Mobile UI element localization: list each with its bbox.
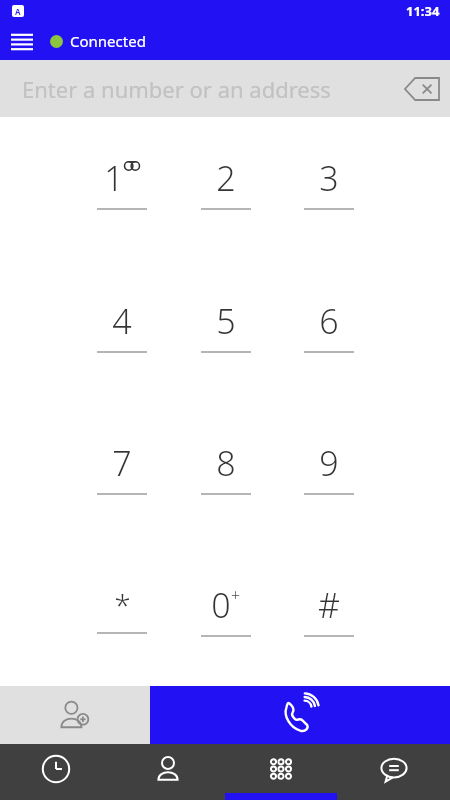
button[interactable]: Call [150,686,450,744]
button[interactable]: Messages [337,744,450,800]
button[interactable]: 4 [70,260,174,402]
button[interactable]: Recents [0,744,112,800]
button[interactable]: 8 [174,402,277,544]
button[interactable]: 5 [174,260,277,402]
button[interactable]: 3 [277,117,380,260]
button[interactable]: 9 [277,402,380,544]
staticText: + [231,584,241,606]
button[interactable]: Enter a number or an address [0,60,450,117]
staticText: 8 [216,440,236,486]
button[interactable]: 7 [70,402,174,544]
staticText: # [318,582,340,628]
staticText: 4 [112,298,132,344]
staticText: 2 [216,155,236,201]
staticText: 6 [319,298,339,344]
button[interactable]: 6 [277,260,380,402]
button[interactable]: 0 [174,544,277,686]
button[interactable]: * [70,544,174,686]
staticText: 1 [104,155,124,201]
button[interactable]: 2 [174,117,277,260]
staticText: A [15,6,21,17]
staticText: Enter a number or an address [22,74,331,104]
button[interactable]: Backspace [400,67,444,111]
staticText: 7 [112,440,132,486]
button[interactable]: 1 [70,117,174,260]
button[interactable]: Contacts [112,744,224,800]
staticText: * [114,584,131,625]
staticText: 5 [216,298,236,344]
staticText: 9 [319,440,339,486]
button[interactable]: Dialpad [224,744,337,800]
staticText: Connected [70,31,146,51]
button[interactable]: Open navigation menu [0,22,44,60]
staticText: 11:34 [406,2,440,20]
staticText: 0 [211,582,231,628]
staticText: 3 [319,155,339,201]
button[interactable]: # [277,544,380,686]
button[interactable]: Add contact [0,686,150,744]
